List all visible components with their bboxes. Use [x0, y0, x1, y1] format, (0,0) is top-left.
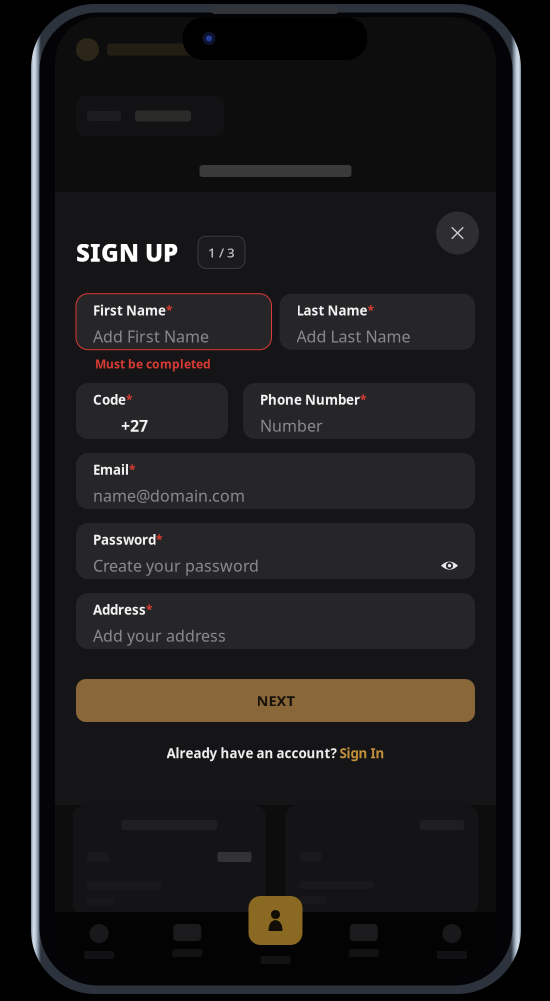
staticText: * [360, 391, 367, 408]
staticText: Sign In [339, 744, 384, 762]
staticText: Must be completed [95, 356, 211, 372]
button[interactable]: Sign In [339, 744, 384, 762]
button[interactable]: Cards [143, 912, 231, 979]
button[interactable]: Password [76, 523, 475, 579]
button[interactable]: Scan [248, 896, 302, 945]
staticText: Phone Number [260, 391, 360, 409]
staticText: * [126, 391, 133, 408]
button[interactable]: Scan [231, 912, 320, 979]
staticText: Email [93, 461, 129, 479]
staticText: +27 [121, 415, 148, 436]
staticText: Address [93, 601, 146, 619]
button[interactable]: Profile [408, 912, 496, 979]
staticText: Create your password [93, 555, 259, 576]
staticText: Add your address [93, 625, 226, 646]
button[interactable]: Home [55, 912, 143, 979]
button[interactable]: Email [76, 453, 475, 509]
button[interactable]: Code [76, 383, 228, 439]
staticText: Add Last Name [296, 325, 410, 347]
staticText: * [146, 601, 153, 618]
button[interactable]: NEXT [76, 679, 475, 722]
staticText: * [156, 531, 163, 548]
staticText: Add First Name [93, 325, 209, 347]
button[interactable]: Address [76, 593, 475, 649]
staticText: 1 / 3 [208, 243, 235, 261]
staticText: SIGN UP [76, 236, 178, 269]
staticText: Already have an account? [166, 744, 339, 762]
button[interactable]: Phone Number [243, 383, 475, 439]
staticText: Last Name [296, 301, 367, 319]
button[interactable]: First Name [76, 294, 271, 350]
staticText: name@domain.com [93, 485, 245, 506]
staticText: * [129, 461, 136, 478]
staticText: Number [260, 415, 323, 436]
button[interactable]: Last Name [279, 294, 475, 350]
button[interactable]: Help [320, 912, 408, 979]
staticText: First Name [93, 301, 166, 319]
staticText: Code [93, 391, 126, 409]
staticText: NEXT [256, 690, 294, 710]
staticText: Password [93, 531, 156, 549]
staticText: * [166, 302, 173, 318]
staticText: * [367, 302, 374, 318]
button[interactable]: Close [436, 211, 479, 254]
